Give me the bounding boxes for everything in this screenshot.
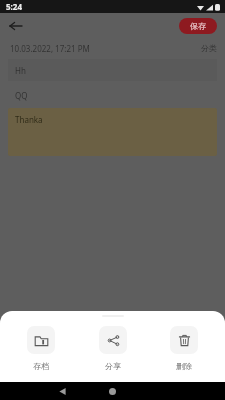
button[interactable]: Share	[84, 326, 142, 371]
button[interactable]: Archive	[12, 326, 70, 371]
button[interactable]: 分类	[201, 43, 217, 53]
staticText: 分享	[105, 361, 121, 371]
staticText: 03-10-2022 PM 5:23	[81, 366, 155, 377]
button[interactable]: 保存	[179, 18, 217, 34]
staticText: QQ	[15, 90, 28, 101]
staticText: 删除	[176, 361, 192, 371]
staticText: Hh	[15, 65, 26, 76]
button[interactable]: Back	[6, 16, 26, 36]
staticText: 保存	[190, 21, 206, 31]
staticText: 5:24	[6, 1, 22, 12]
button[interactable]: Thanka	[8, 108, 217, 156]
staticText: Thanka	[15, 114, 43, 125]
staticText: 分类	[201, 43, 217, 53]
staticText: 10.03.2022, 17:21 PM	[10, 43, 90, 54]
staticText: 存档	[33, 361, 49, 371]
button[interactable]: Delete	[155, 326, 213, 371]
